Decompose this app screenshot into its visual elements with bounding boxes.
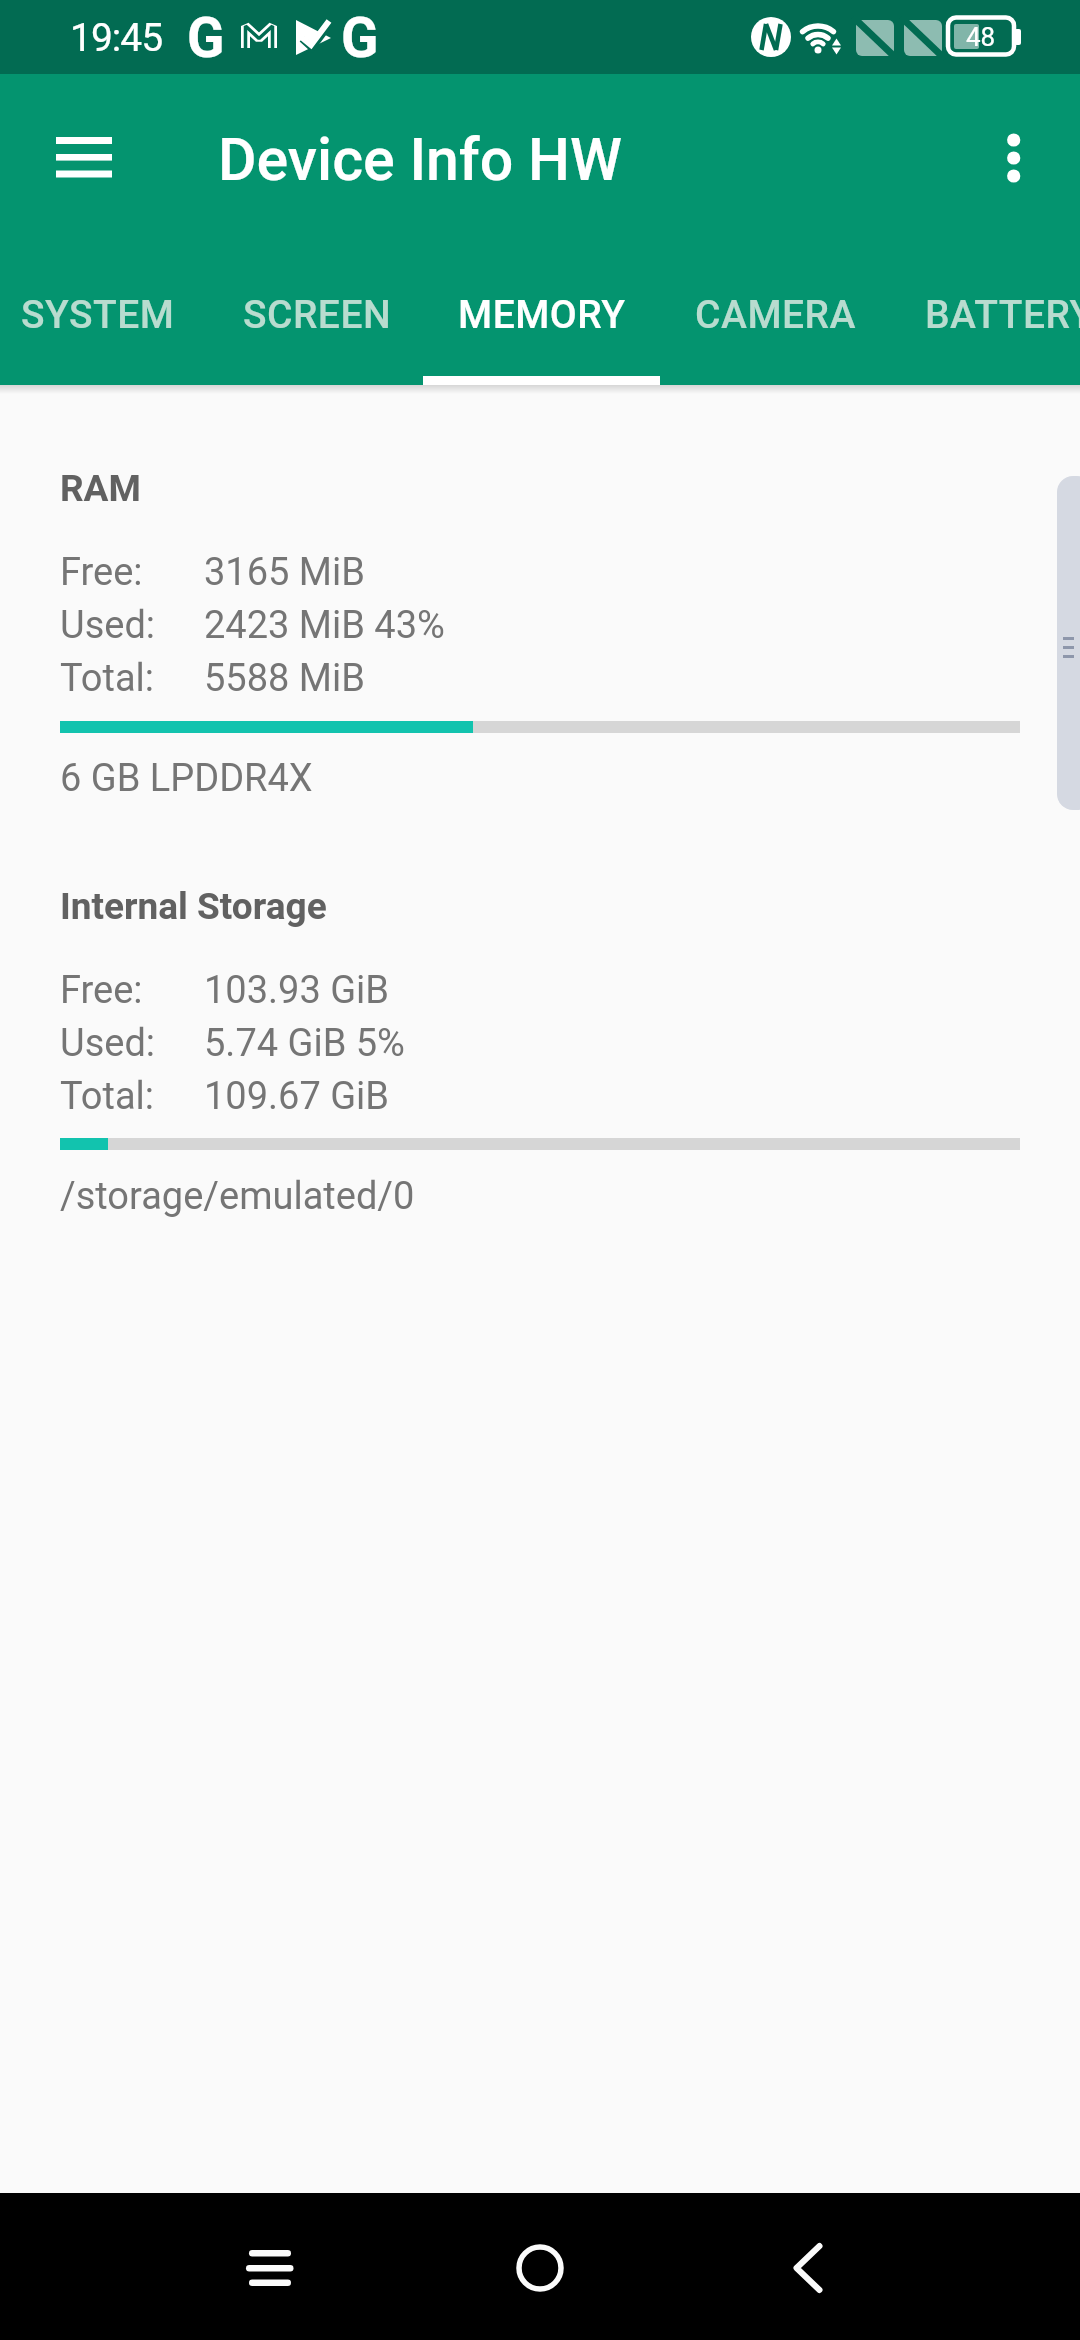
staticText: 109.67 GiB [204,1074,390,1119]
staticText: Free: [60,968,143,1013]
button[interactable] [206,241,421,385]
staticText: 103.93 GiB [204,968,390,1013]
staticText: RAM [60,467,141,510]
staticText: G [187,6,225,70]
staticText: 6 GB LPDDR4X [60,756,313,801]
staticText: G [341,6,379,70]
staticText: /storage/emulated/0 [60,1174,415,1219]
button[interactable] [720,2200,900,2340]
staticText: MEMORY [458,292,626,338]
button[interactable] [450,2200,630,2340]
staticText: SYSTEM [21,292,175,338]
staticText: Used: [60,603,156,648]
staticText: Used: [60,1021,156,1066]
button[interactable] [40,116,130,200]
staticText: Total: [60,1074,155,1119]
button[interactable] [978,116,1048,200]
staticText: 19:45 [70,15,163,61]
button[interactable] [180,2200,360,2340]
staticText: 5588 MiB [204,656,365,701]
staticText: SCREEN [243,292,392,338]
staticText: Free: [60,550,143,595]
button[interactable] [658,241,890,385]
button[interactable] [421,241,658,385]
button[interactable] [0,241,206,385]
staticText: 3165 MiB [204,550,365,595]
staticText: Device Info HW [218,125,622,194]
staticText: BATTERY [925,292,1080,338]
staticText: CAMERA [695,292,856,338]
staticText: 48 [966,22,996,52]
button[interactable] [890,241,1080,385]
staticText: 5.74 GiB 5% [204,1021,405,1066]
staticText: 2423 MiB 43% [204,603,445,648]
staticText: Internal Storage [60,885,327,928]
staticText: Total: [60,656,155,701]
